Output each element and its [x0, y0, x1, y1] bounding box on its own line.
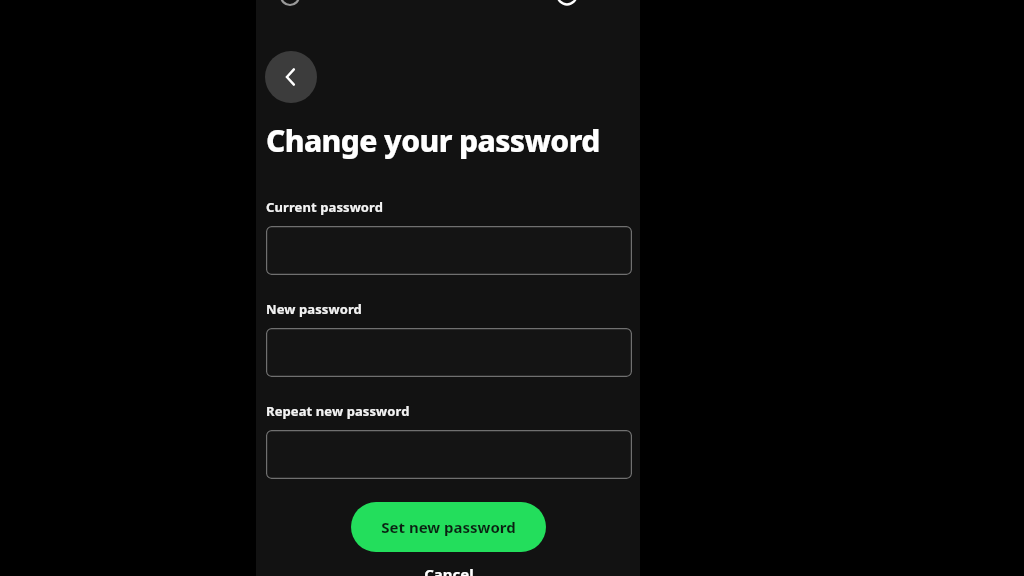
staticText: New password — [266, 300, 362, 318]
button[interactable]: Set new password — [351, 502, 546, 552]
button[interactable]: Password input — [266, 226, 632, 275]
button[interactable]: Back — [265, 51, 317, 103]
button[interactable]: Password input — [266, 430, 632, 479]
staticText: Repeat new password — [266, 402, 410, 420]
button[interactable]: Cancel — [371, 564, 526, 576]
staticText: Current password — [266, 198, 384, 216]
staticText: Change your password — [266, 120, 600, 161]
button[interactable]: Password input — [266, 328, 632, 377]
staticText: Set new password — [381, 517, 516, 537]
staticText: Cancel — [424, 564, 474, 576]
